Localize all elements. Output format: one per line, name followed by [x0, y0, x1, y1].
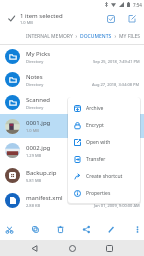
staticText: manifest.xml	[26, 194, 63, 202]
staticText: Sep 25, 2018, 7:49:41 PM	[93, 59, 140, 64]
button[interactable]	[106, 245, 113, 252]
staticText: Properties	[86, 190, 111, 197]
button[interactable]: DOCUMENTS	[80, 33, 112, 40]
staticText: Jan 01, 2009, 9:00:00 AM	[94, 203, 140, 208]
button[interactable]	[5, 225, 14, 234]
button[interactable]: Notes	[0, 68, 144, 91]
button[interactable]: 0001.jpg	[0, 114, 144, 138]
button[interactable]	[133, 225, 142, 234]
staticText: 0001.jpg	[26, 119, 51, 127]
button[interactable]: Encrypt	[68, 117, 140, 134]
button[interactable]	[69, 245, 76, 252]
button[interactable]: Transfer	[68, 151, 140, 168]
button[interactable]	[31, 245, 38, 252]
staticText: ›	[112, 33, 119, 40]
staticText: 7:54	[133, 2, 142, 8]
button[interactable]: Open with	[68, 134, 140, 151]
staticText: Directory	[26, 59, 44, 64]
staticText: Directory	[26, 105, 44, 110]
button[interactable]: Archive	[68, 100, 140, 117]
staticText: Transfer	[86, 156, 106, 163]
button[interactable]: Create shortcut	[68, 168, 140, 185]
staticText: Encrypt	[86, 122, 104, 129]
staticText: Scanned	[26, 96, 51, 104]
button[interactable]: INTERNAL MEMORY	[26, 33, 73, 40]
staticText: Backup.zip	[26, 169, 57, 177]
button[interactable]	[56, 225, 65, 234]
staticText: Archive	[86, 105, 104, 112]
button[interactable]: Properties	[68, 185, 140, 202]
staticText: 1.0 MB	[20, 20, 33, 25]
staticText: 5.81 MB	[26, 178, 42, 183]
staticText: My Picks	[26, 50, 51, 58]
button[interactable]: Scanned	[0, 91, 144, 114]
button[interactable]	[128, 15, 136, 23]
staticText: Jul 12, 2018, 2:11:07 PM	[95, 153, 140, 158]
button[interactable]	[82, 225, 91, 234]
button[interactable]	[31, 225, 40, 234]
staticText: 1 item selected	[20, 12, 63, 20]
staticText: Sep 03, 2018, 1:21:12 PM	[93, 105, 140, 110]
staticText: ›	[73, 33, 80, 40]
button[interactable]: Backup.zip	[0, 163, 144, 188]
staticText: Open with	[86, 139, 111, 146]
staticText: Directory	[26, 82, 44, 87]
button[interactable]	[107, 15, 115, 23]
staticText: Notes	[26, 73, 43, 81]
staticText: 2.88 KB	[26, 203, 41, 208]
staticText: 1.0 MB	[26, 128, 39, 133]
staticText: 0002.jpg	[26, 144, 51, 152]
button[interactable]: 0002.jpg	[0, 138, 144, 163]
button[interactable]: manifest.xml	[0, 188, 144, 213]
button[interactable]: My Picks	[0, 45, 144, 68]
staticText: 1.29 MB	[26, 153, 42, 158]
staticText: Create shortcut	[86, 173, 123, 180]
staticText: Aug 27, 2018, 3:34:08 PM	[92, 82, 140, 87]
button[interactable]: MY FILES	[119, 33, 141, 40]
button[interactable]	[107, 225, 116, 234]
